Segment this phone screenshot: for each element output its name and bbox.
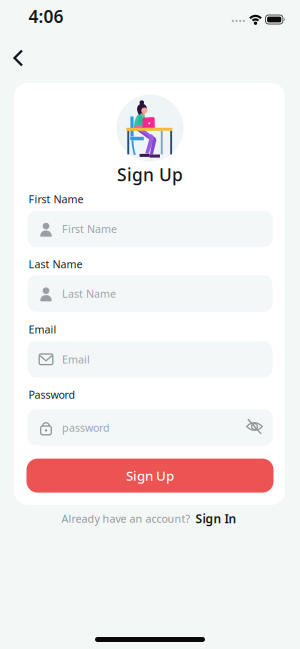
button[interactable]: Sign In bbox=[195, 510, 236, 526]
staticText: Email bbox=[28, 322, 56, 336]
staticText: Last Name bbox=[62, 286, 116, 301]
staticText: First Name bbox=[62, 222, 117, 236]
staticText: 4:06 bbox=[28, 5, 63, 28]
button[interactable]: Show password bbox=[243, 415, 265, 437]
button[interactable]: Last Name bbox=[27, 275, 272, 312]
staticText: Already have an account? bbox=[61, 511, 190, 526]
staticText: Sign Up bbox=[117, 163, 183, 186]
button[interactable]: Back bbox=[3, 43, 33, 73]
button[interactable]: First Name bbox=[27, 211, 272, 247]
button[interactable]: Sign Up bbox=[26, 459, 273, 493]
staticText: First Name bbox=[28, 192, 83, 206]
button[interactable]: Email bbox=[27, 341, 272, 378]
staticText: Sign Up bbox=[126, 467, 174, 484]
staticText: password bbox=[62, 420, 110, 435]
staticText: Last Name bbox=[28, 257, 82, 271]
staticText: Password bbox=[28, 387, 75, 402]
staticText: Sign In bbox=[195, 510, 236, 526]
button[interactable]: password bbox=[27, 409, 272, 446]
staticText: Email bbox=[62, 352, 90, 366]
